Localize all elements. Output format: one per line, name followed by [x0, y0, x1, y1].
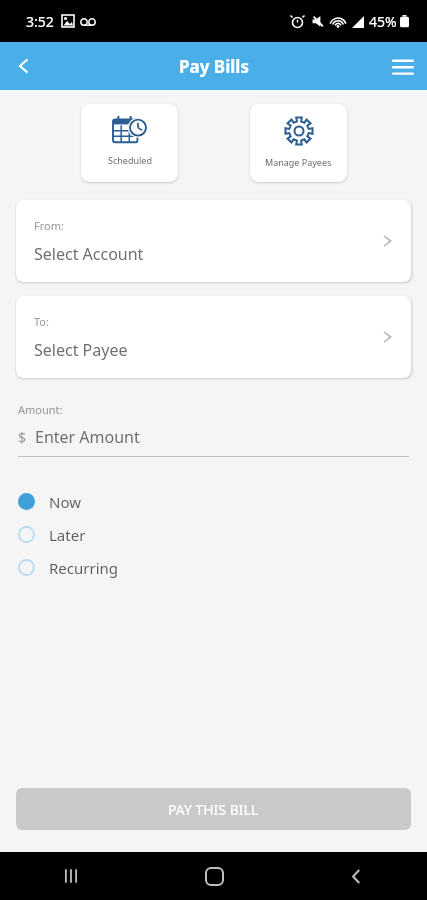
button[interactable]: From:	[16, 200, 411, 282]
staticText: Pay Bills	[179, 55, 249, 78]
button[interactable]: Recurring	[0, 551, 427, 584]
staticText: 45%	[369, 12, 397, 31]
button[interactable]: Recent apps	[47, 852, 95, 900]
button[interactable]: Back	[0, 42, 48, 90]
staticText: Manage Payees	[265, 156, 332, 168]
button[interactable]: Later	[0, 518, 427, 551]
staticText: Select Account	[34, 243, 144, 265]
staticText: Enter Amount	[35, 426, 140, 448]
staticText: To:	[34, 314, 49, 329]
staticText: PAY THIS BILL	[168, 800, 259, 819]
button[interactable]: To:	[16, 296, 411, 378]
button[interactable]: Manage Payees	[250, 104, 347, 182]
staticText: From:	[34, 218, 64, 233]
button[interactable]: Home	[190, 852, 238, 900]
button[interactable]: Scheduled	[81, 104, 178, 182]
staticText: $	[18, 428, 27, 447]
staticText: Later	[49, 525, 86, 545]
staticText: Amount:	[18, 402, 63, 417]
staticText: 3:52	[26, 12, 54, 31]
staticText: Now	[49, 492, 81, 512]
button[interactable]: Menu	[379, 42, 427, 90]
button[interactable]: Back	[332, 852, 380, 900]
staticText: Select Payee	[34, 339, 128, 361]
staticText: Recurring	[49, 558, 119, 578]
button[interactable]: Now	[0, 485, 427, 518]
staticText: Scheduled	[108, 154, 152, 166]
button[interactable]: PAY THIS BILL	[16, 788, 411, 830]
